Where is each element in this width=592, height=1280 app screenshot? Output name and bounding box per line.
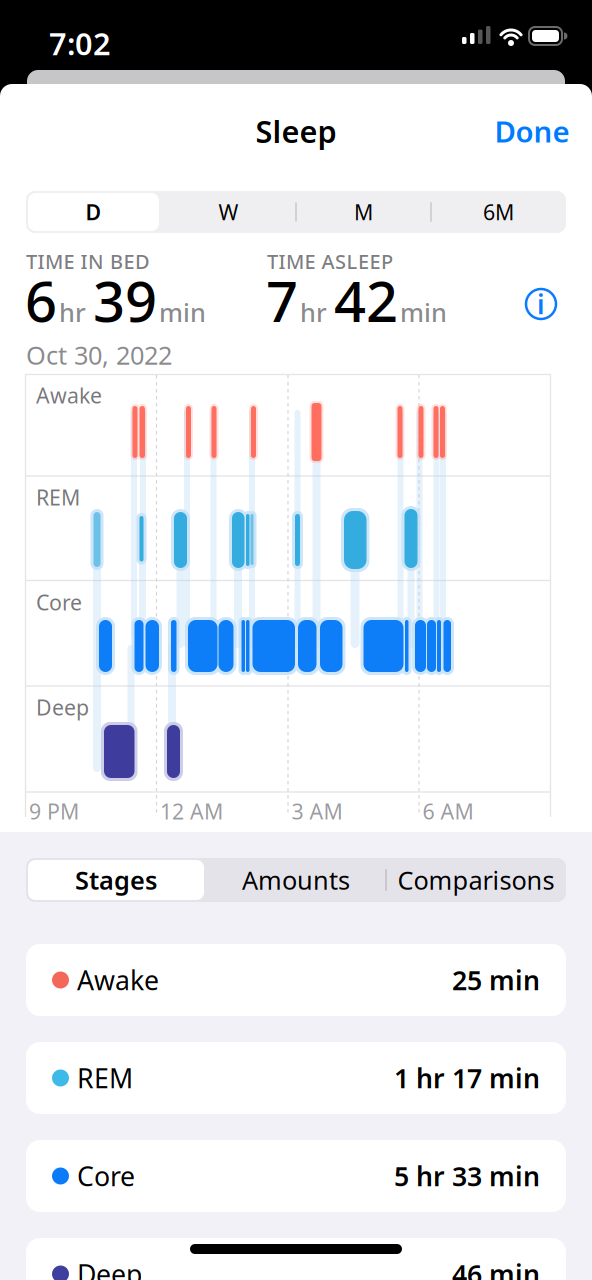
staticText: W [218,198,238,226]
staticText: i [537,286,545,322]
staticText: Stages [75,863,157,897]
staticText: Awake [36,381,102,409]
staticText: Core [77,1158,135,1194]
staticText: 6M [483,198,514,226]
staticText: TIME IN BED [26,248,150,275]
staticText: 25 min [452,962,540,998]
button[interactable]: D [26,191,161,233]
staticText: Comparisons [397,863,554,897]
button[interactable]: W [161,191,296,233]
button[interactable]: Deep [26,1238,566,1280]
staticText: 5 hr 33 min [394,1158,540,1194]
button[interactable]: Stages [26,858,206,902]
button[interactable]: M [296,191,431,233]
staticText: REM [77,1060,133,1096]
staticText: Awake [77,962,159,998]
staticText: Oct 30, 2022 [26,338,172,372]
staticText: 7 [266,263,298,337]
staticText: M [354,198,373,226]
button[interactable]: Awake [26,944,566,1016]
staticText: Core [36,588,82,616]
staticText: 6 AM [422,797,473,825]
staticText: 6 [25,263,57,337]
staticText: 7:02 [49,23,111,64]
staticText: Amounts [242,863,350,897]
staticText: D [85,198,101,226]
staticText: min [159,295,206,329]
button[interactable]: REM [26,1042,566,1114]
button[interactable]: 6M [431,191,566,233]
staticText: REM [36,483,80,511]
button[interactable]: About Sleep [524,287,558,321]
staticText: 9 PM [29,797,79,825]
staticText: 46 min [452,1256,540,1280]
button[interactable]: Comparisons [386,858,566,902]
staticText: Deep [36,693,89,721]
staticText: min [400,295,447,329]
staticText: 39 [93,263,157,337]
staticText: Done [494,111,569,150]
staticText: Deep [77,1256,142,1280]
staticText: Sleep [255,111,336,151]
staticText: 42 [334,263,398,337]
staticText: hr [300,295,327,329]
staticText: TIME ASLEEP [267,248,393,275]
staticText: 3 AM [291,797,342,825]
button[interactable]: Done [494,111,569,150]
staticText: 1 hr 17 min [394,1060,540,1096]
button[interactable]: Amounts [206,858,386,902]
staticText: 12 AM [160,797,223,825]
staticText: hr [59,295,86,329]
button[interactable]: Core [26,1140,566,1212]
